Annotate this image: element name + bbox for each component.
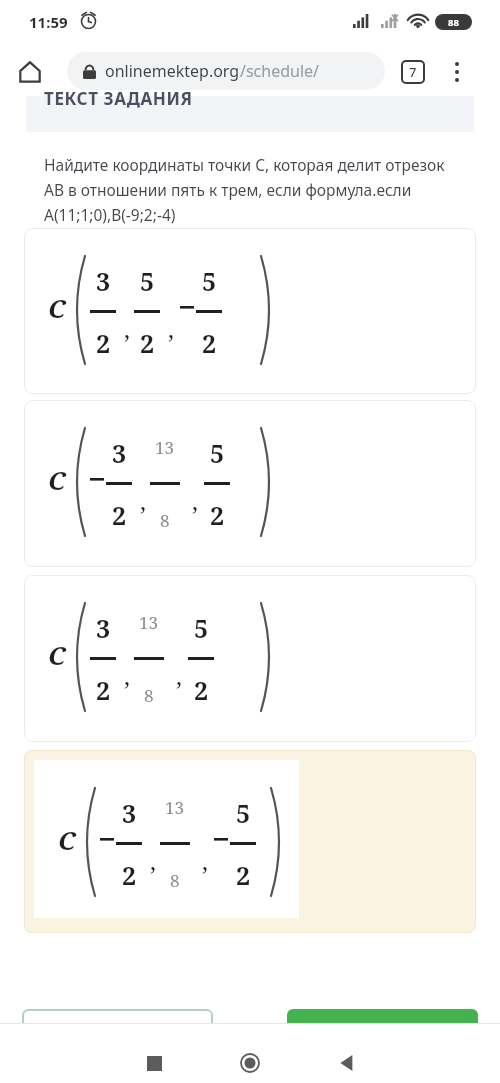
button[interactable]: Tabs (397, 56, 429, 88)
staticText: 88 (448, 16, 459, 29)
button[interactable]: C (24, 575, 476, 742)
staticText: 3 (96, 611, 111, 645)
staticText: 13 (155, 436, 175, 459)
button[interactable]: Recent apps (136, 1045, 172, 1081)
staticText: 5 (210, 436, 225, 470)
staticText: C (48, 462, 66, 497)
staticText: onlinemektep.org (105, 60, 240, 82)
staticText: 3 (112, 436, 127, 470)
staticText: 11:59 (29, 12, 68, 32)
button[interactable]: Primary action (287, 1009, 478, 1053)
staticText: 2 (140, 326, 155, 360)
staticText: 2 (202, 326, 217, 360)
staticText: , (124, 312, 130, 345)
staticText: 2 (96, 673, 111, 707)
staticText: , (202, 844, 208, 877)
staticText: , (168, 312, 174, 345)
staticText: C (58, 822, 76, 857)
staticText: 5 (140, 264, 155, 298)
button[interactable]: Back (328, 1045, 364, 1081)
staticText: /schedule/ (240, 60, 320, 82)
staticText: 8 (170, 869, 180, 892)
button[interactable]: Home (232, 1045, 268, 1081)
staticText: C (48, 637, 66, 672)
staticText: ТЕКСТ ЗАДАНИЯ (44, 87, 193, 110)
staticText: Найдите координаты точки C, которая дели… (44, 154, 448, 225)
staticText: , (176, 659, 182, 692)
staticText: 2 (210, 498, 225, 532)
staticText: 8 (160, 509, 170, 532)
staticText: 13 (165, 796, 185, 819)
staticText: 3 (96, 264, 111, 298)
staticText: , (140, 484, 146, 517)
staticText: 13 (139, 611, 159, 634)
staticText: 3 (122, 796, 137, 830)
button[interactable]: C (24, 228, 476, 394)
staticText: 5 (202, 264, 217, 298)
staticText: 2 (194, 673, 209, 707)
staticText: 2 (122, 858, 137, 892)
staticText: 2 (236, 858, 251, 892)
staticText: 5 (236, 796, 251, 830)
button[interactable]: C (24, 400, 476, 567)
button[interactable]: Secondary action (22, 1009, 213, 1053)
staticText: , (124, 659, 130, 692)
button[interactable]: Home (12, 54, 48, 90)
staticText: 2 (96, 326, 111, 360)
button[interactable]: onlinemektep.org (67, 52, 385, 90)
staticText: 7 (409, 63, 417, 81)
staticText: 8 (144, 684, 154, 707)
staticText: C (48, 290, 66, 325)
button[interactable]: C (24, 750, 476, 933)
staticText: 2 (112, 498, 127, 532)
staticText: , (150, 844, 156, 877)
button[interactable]: More options (441, 56, 473, 88)
staticText: , (192, 484, 198, 517)
staticText: 5 (194, 611, 209, 645)
